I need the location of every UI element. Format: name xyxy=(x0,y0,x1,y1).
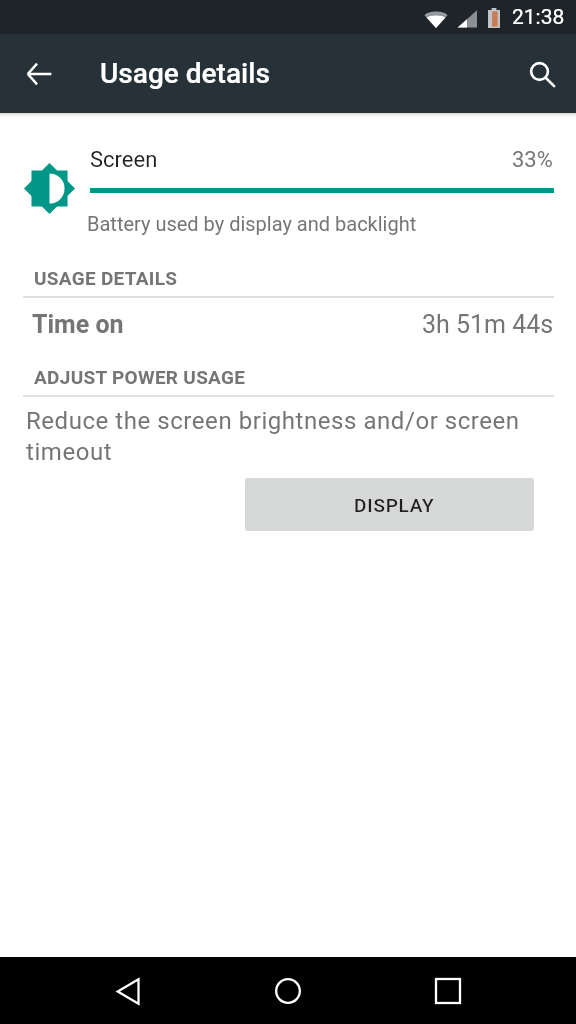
staticText: DISPLAY xyxy=(354,494,435,516)
staticText: Time on xyxy=(32,310,124,339)
button[interactable]: DISPLAY xyxy=(245,478,534,531)
button[interactable]: Navigate up xyxy=(11,46,67,102)
staticText: Reduce the screen brightness and/or scre… xyxy=(26,407,530,466)
button[interactable]: Back xyxy=(96,959,160,1023)
staticText: Battery used by display and backlight xyxy=(87,212,417,235)
staticText: Usage details xyxy=(100,57,270,90)
button[interactable]: Time on xyxy=(0,298,576,350)
staticText: 3h 51m 44s xyxy=(422,310,554,339)
staticText: 21:38 xyxy=(512,5,565,30)
staticText: USAGE DETAILS xyxy=(34,267,178,289)
staticText: 33% xyxy=(512,147,553,173)
button[interactable]: Recent apps xyxy=(416,959,480,1023)
button[interactable]: Search xyxy=(514,46,570,102)
staticText: ADJUST POWER USAGE xyxy=(34,366,246,388)
button[interactable]: Home xyxy=(256,959,320,1023)
staticText: Screen xyxy=(90,147,158,173)
